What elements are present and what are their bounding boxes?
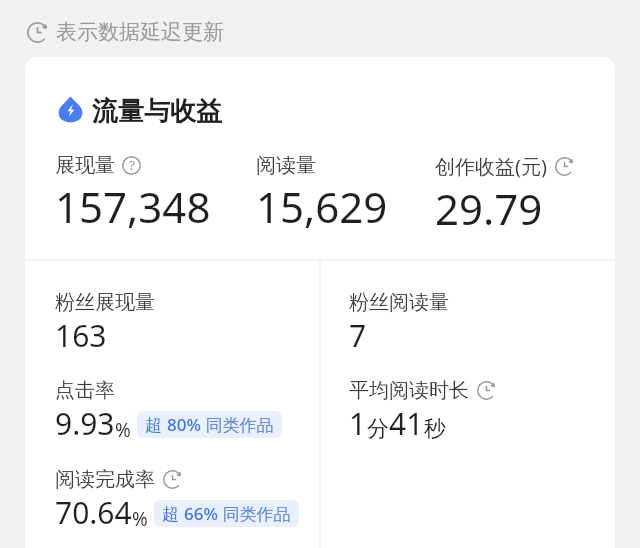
staticText: 7: [349, 315, 367, 356]
staticText: %: [115, 417, 131, 443]
staticText: 1: [349, 403, 367, 444]
staticText: 41: [389, 403, 424, 444]
staticText: 同类作品: [218, 502, 291, 525]
staticText: 创作收益(元): [435, 153, 547, 180]
staticText: ?: [129, 156, 135, 174]
button[interactable]: 阅读量: [256, 153, 435, 235]
staticText: 平均阅读时长: [349, 378, 469, 403]
staticText: 粉丝阅读量: [349, 290, 449, 315]
button[interactable]: 粉丝展现量: [55, 290, 155, 356]
staticText: 流量与收益: [92, 95, 222, 128]
staticText: 70.64: [55, 492, 132, 533]
button[interactable]: 粉丝阅读量: [349, 290, 449, 356]
staticText: 29.79: [435, 180, 543, 237]
staticText: 66%: [184, 502, 218, 525]
button[interactable]: 展现量: [55, 153, 256, 235]
button[interactable]: 超: [154, 500, 299, 527]
staticText: 15,629: [256, 178, 388, 235]
staticText: %: [132, 506, 148, 532]
staticText: 粉丝展现量: [55, 290, 155, 315]
staticText: 157,348: [55, 178, 211, 235]
staticText: 80%: [167, 413, 201, 436]
staticText: 163: [55, 315, 107, 356]
button[interactable]: 数据延迟更新说明: [27, 19, 224, 45]
button[interactable]: 创作收益(元): [435, 153, 605, 237]
staticText: 超: [162, 502, 184, 525]
staticText: 表示数据延迟更新: [56, 19, 224, 45]
staticText: 超: [145, 413, 167, 436]
button[interactable]: 点击率: [55, 378, 282, 444]
staticText: 分: [367, 415, 389, 443]
staticText: 同类作品: [201, 413, 274, 436]
button[interactable]: 平均阅读时长: [349, 378, 496, 444]
staticText: 阅读完成率: [55, 467, 155, 492]
staticText: 阅读量: [256, 153, 316, 178]
staticText: 秒: [424, 415, 446, 443]
staticText: 点击率: [55, 378, 115, 403]
button[interactable]: 流量与收益: [58, 92, 222, 125]
button[interactable]: 阅读完成率: [55, 467, 299, 533]
staticText: 9.93: [55, 403, 115, 444]
staticText: 展现量: [55, 153, 115, 178]
button[interactable]: 超: [137, 411, 282, 438]
